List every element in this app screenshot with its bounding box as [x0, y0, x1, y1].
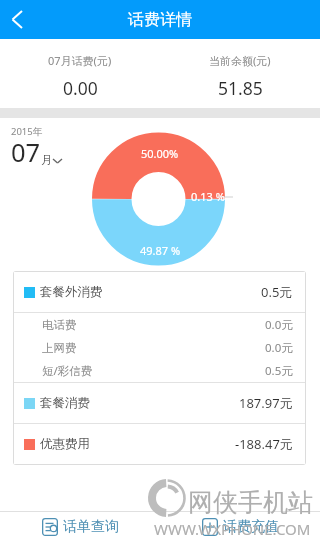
staticText: 07: [11, 135, 41, 170]
staticText: 上网费: [42, 341, 77, 355]
staticText: -188.47元: [235, 435, 293, 453]
staticText: 0.0元: [265, 340, 293, 356]
button[interactable]: Back: [0, 0, 34, 39]
button[interactable]: 短/彩信费: [14, 359, 305, 382]
button[interactable]: 套餐消费: [14, 383, 305, 423]
button[interactable]: 话费充值: [160, 512, 320, 542]
staticText: 2015年: [11, 125, 43, 138]
staticText: 07月话费(元): [48, 53, 112, 68]
staticText: 话费详情: [128, 10, 192, 30]
staticText: 话费充值: [223, 518, 279, 536]
button[interactable]: 当前余额(元): [160, 39, 320, 108]
staticText: 当前余额(元): [209, 53, 271, 68]
staticText: 短/彩信费: [42, 363, 93, 379]
staticText: 49.87 %: [140, 243, 181, 258]
staticText: 月: [41, 153, 52, 167]
staticText: 0.5元: [261, 283, 293, 301]
staticText: 套餐外消费: [40, 284, 103, 300]
button[interactable]: 套餐外消费: [14, 272, 305, 312]
button[interactable]: 优惠费用: [14, 424, 305, 464]
button[interactable]: 上网费: [14, 336, 305, 359]
staticText: 0.5元: [265, 363, 293, 379]
button[interactable]: 话单查询: [0, 512, 160, 542]
staticText: 0.13 %: [191, 189, 225, 204]
staticText: 网侠手机站: [188, 487, 313, 518]
staticText: 50.00%: [141, 146, 179, 161]
staticText: 0.00: [63, 76, 98, 100]
staticText: 0.0元: [265, 317, 293, 333]
staticText: 51.85: [218, 76, 263, 100]
button[interactable]: 07月话费(元): [0, 39, 160, 108]
staticText: 话单查询: [63, 518, 119, 536]
staticText: WWW.WXPHONE.COM: [154, 519, 311, 539]
staticText: 187.97元: [239, 394, 293, 412]
staticText: 优惠费用: [40, 436, 90, 452]
staticText: 套餐消费: [40, 395, 90, 411]
staticText: 电话费: [42, 318, 77, 332]
button[interactable]: 电话费: [14, 313, 305, 336]
